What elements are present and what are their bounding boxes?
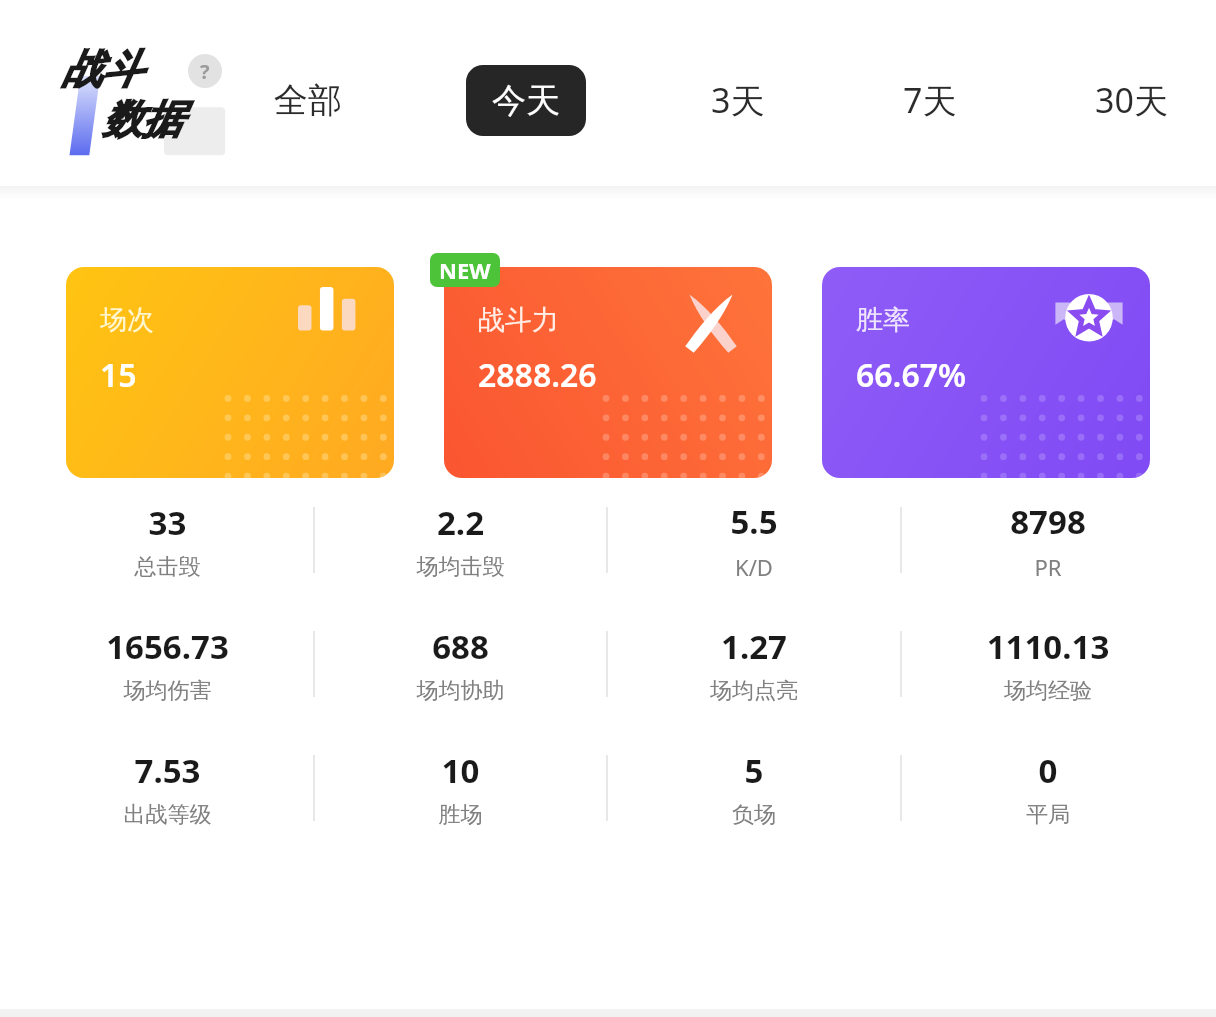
button[interactable]: 1110.13 <box>902 624 1194 705</box>
button[interactable]: 5.5 <box>608 499 900 582</box>
staticText: 1.27 <box>608 624 900 669</box>
staticText: 总击毁 <box>22 553 313 581</box>
button[interactable]: 1656.73 <box>22 624 313 705</box>
staticText: 3天 <box>711 77 765 123</box>
staticText: 今天 <box>492 79 560 122</box>
staticText: 688 <box>315 624 606 669</box>
button[interactable]: 场次 <box>66 267 394 478</box>
button[interactable]: 战斗力 <box>444 267 772 478</box>
staticText: 场均伤害 <box>22 677 313 705</box>
staticText: 战斗力 <box>478 303 559 337</box>
button[interactable]: 5 <box>608 748 900 829</box>
staticText: 1656.73 <box>22 624 313 669</box>
staticText: 8798 <box>902 499 1194 544</box>
staticText: 胜率 <box>856 303 910 337</box>
staticText: 66.67% <box>856 353 967 397</box>
button[interactable]: 7天 <box>889 63 971 137</box>
staticText: 7.53 <box>22 748 313 793</box>
button[interactable]: 3天 <box>697 63 779 137</box>
staticText: 负场 <box>608 801 900 829</box>
staticText: PR <box>902 552 1194 582</box>
staticText: 33 <box>22 500 313 545</box>
staticText: 数据 <box>102 94 182 144</box>
button[interactable]: NEW <box>430 253 500 287</box>
staticText: 胜场 <box>315 801 606 829</box>
staticText: 5.5 <box>608 499 900 544</box>
button[interactable]: 10 <box>315 748 606 829</box>
button[interactable]: 胜率 <box>822 267 1150 478</box>
staticText: ? <box>200 58 210 85</box>
staticText: 全部 <box>274 79 342 122</box>
button[interactable]: 1.27 <box>608 624 900 705</box>
staticText: 场均点亮 <box>608 677 900 705</box>
staticText: 30天 <box>1095 77 1168 123</box>
staticText: 战斗 <box>62 44 142 94</box>
staticText: 1110.13 <box>902 624 1194 669</box>
button[interactable]: 33 <box>22 500 313 581</box>
staticText: 场次 <box>100 303 154 337</box>
staticText: 10 <box>315 748 606 793</box>
button[interactable]: 2.2 <box>315 500 606 581</box>
button[interactable]: 帮助 <box>188 54 222 88</box>
staticText: 7天 <box>903 77 957 123</box>
button[interactable]: 全部 <box>260 65 356 136</box>
button[interactable]: 7.53 <box>22 748 313 829</box>
staticText: 2.2 <box>315 500 606 545</box>
staticText: 场均击毁 <box>315 553 606 581</box>
staticText: 场均协助 <box>315 677 606 705</box>
staticText: K/D <box>608 552 900 582</box>
button[interactable]: 688 <box>315 624 606 705</box>
staticText: NEW <box>439 255 491 285</box>
staticText: 平局 <box>902 801 1194 829</box>
button[interactable]: 8798 <box>902 499 1194 582</box>
button[interactable]: 30天 <box>1081 63 1182 137</box>
staticText: 2888.26 <box>478 353 597 397</box>
staticText: 15 <box>100 353 137 397</box>
button[interactable]: 今天 <box>466 65 586 136</box>
staticText: 场均经验 <box>902 677 1194 705</box>
staticText: 出战等级 <box>22 801 313 829</box>
staticText: 0 <box>902 748 1194 793</box>
button[interactable]: 0 <box>902 748 1194 829</box>
staticText: 5 <box>608 748 900 793</box>
